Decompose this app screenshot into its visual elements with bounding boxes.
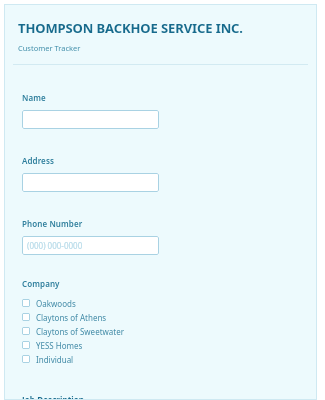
staticText: Job Description	[22, 394, 85, 400]
button[interactable]: YESS Homes	[22, 338, 307, 352]
button[interactable]: Claytons of Sweetwater	[22, 324, 307, 338]
button[interactable]: Oakwoods	[22, 296, 307, 310]
staticText: Customer Tracker	[18, 43, 81, 53]
staticText: Oakwoods	[36, 298, 76, 309]
staticText: Address	[22, 155, 54, 166]
staticText: (000) 000-0000	[27, 240, 83, 251]
staticText: Individual	[36, 354, 74, 365]
staticText: YESS Homes	[36, 340, 83, 351]
staticText: Claytons of Sweetwater	[36, 326, 125, 337]
button[interactable]	[22, 173, 159, 192]
button[interactable]: Claytons of Athens	[22, 310, 307, 324]
staticText: Company	[22, 278, 60, 289]
staticText: THOMPSON BACKHOE SERVICE INC.	[18, 19, 243, 37]
button[interactable]: (000) 000-0000	[22, 236, 159, 255]
button[interactable]: Individual	[22, 352, 307, 366]
staticText: Claytons of Athens	[36, 312, 107, 323]
button[interactable]	[22, 110, 159, 129]
staticText: Phone Number	[22, 218, 83, 229]
staticText: Name	[22, 92, 46, 103]
